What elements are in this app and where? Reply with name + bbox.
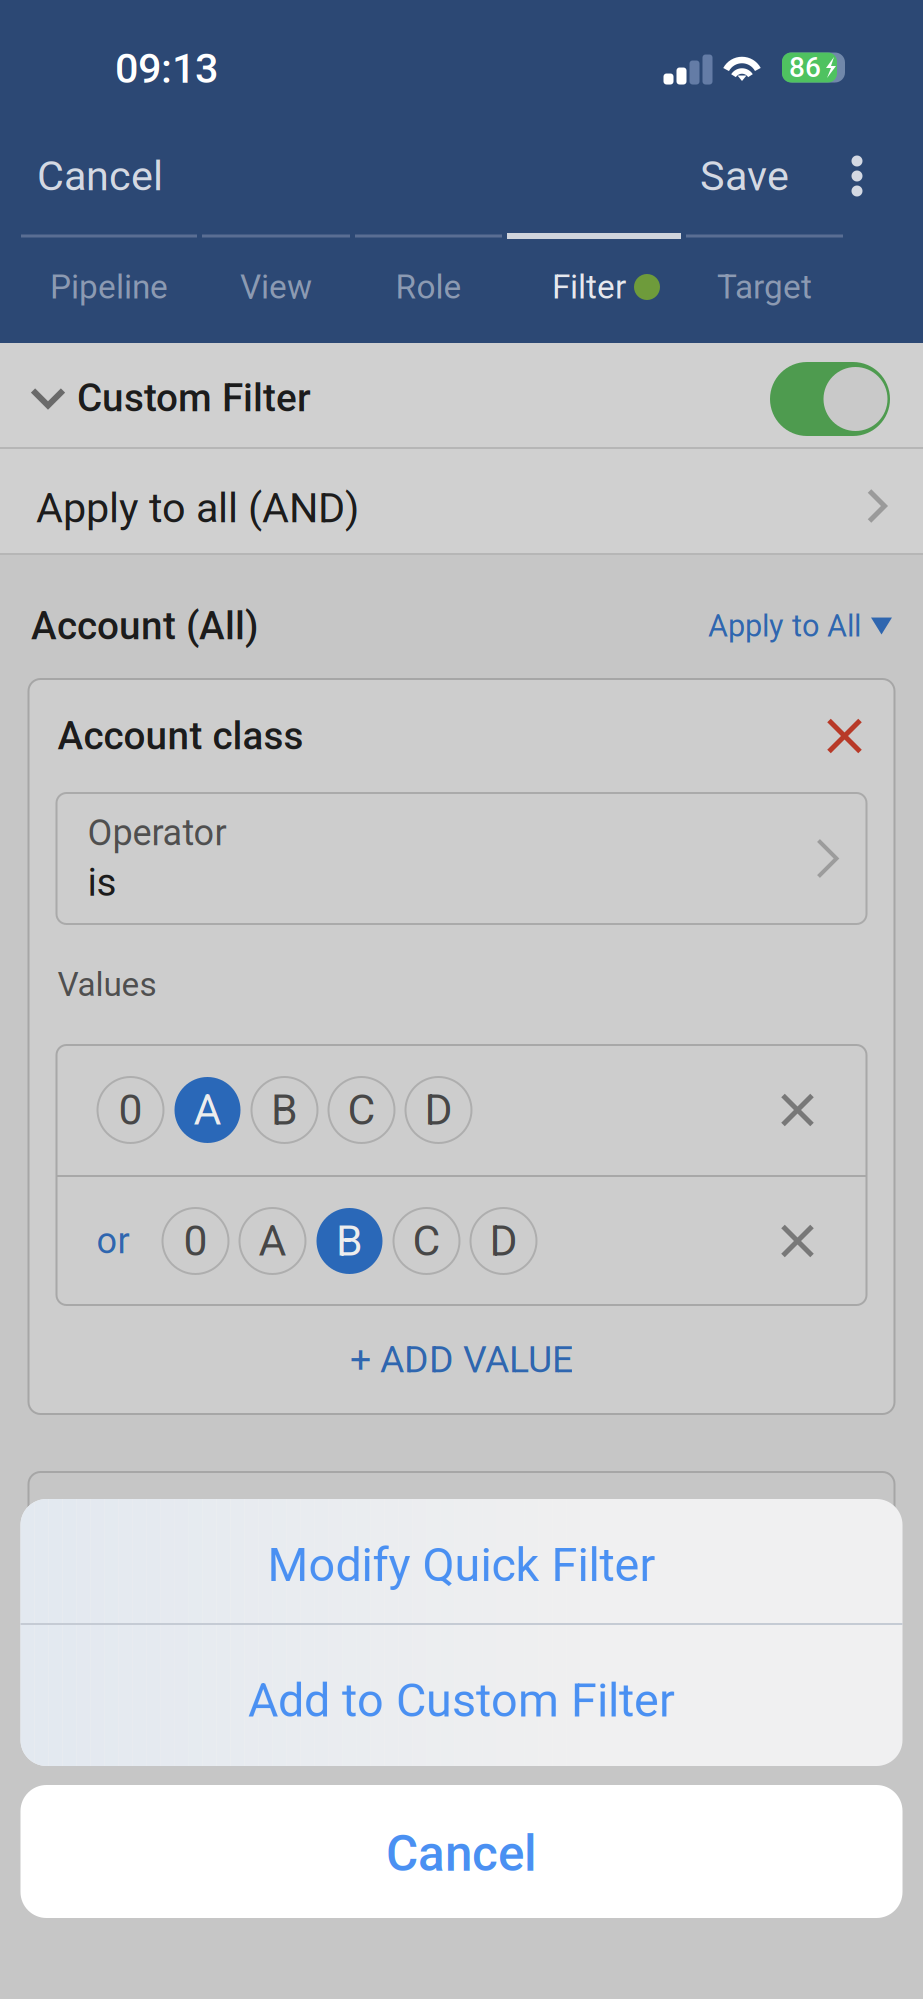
button[interactable]: Apply to All: [708, 604, 892, 648]
staticText: A: [193, 1085, 221, 1135]
staticText: Values: [57, 965, 156, 1004]
staticText: Cancel: [37, 152, 163, 200]
button[interactable]: Remove value: [767, 1080, 827, 1140]
staticText: Custom Filter: [77, 375, 311, 421]
button[interactable]: Cancel: [0, 137, 189, 215]
staticText: Filter: [552, 267, 626, 307]
staticText: 0: [118, 1085, 142, 1135]
staticText: Modify Quick Filter: [267, 1538, 655, 1592]
staticText: Apply to all (AND): [36, 484, 359, 532]
staticText: C: [347, 1085, 375, 1135]
staticText: Target: [717, 267, 812, 307]
button[interactable]: Apply to all (AND): [0, 449, 923, 553]
button[interactable]: Operator: [56, 793, 866, 924]
button[interactable]: Role: [355, 239, 502, 335]
staticText: is: [87, 860, 116, 905]
staticText: Cancel: [386, 1825, 537, 1883]
staticText: B: [336, 1216, 363, 1266]
button[interactable]: Add to Custom Filter: [20, 1625, 902, 1766]
staticText: 0: [183, 1216, 207, 1266]
staticText: Save: [700, 152, 789, 200]
staticText: D: [424, 1085, 452, 1135]
staticText: Add to Custom Filter: [248, 1673, 675, 1728]
staticText: C: [412, 1216, 440, 1266]
staticText: or: [96, 1220, 129, 1262]
button[interactable]: More options: [828, 137, 886, 215]
staticText: + ADD VALUE: [350, 1338, 573, 1381]
button[interactable]: Filter: [507, 239, 681, 335]
button[interactable]: Remove Account class: [817, 709, 871, 763]
staticText: Account class: [57, 713, 303, 759]
staticText: Role: [395, 267, 461, 307]
button[interactable]: Cancel: [20, 1785, 902, 1918]
button[interactable]: Remove value: [767, 1211, 827, 1271]
staticText: Pipeline: [50, 267, 168, 307]
staticText: Apply to All: [708, 608, 861, 644]
button[interactable]: Target: [686, 239, 843, 335]
staticText: D: [489, 1216, 517, 1266]
button[interactable]: Modify Quick Filter: [20, 1499, 902, 1623]
staticText: Operator: [87, 812, 226, 854]
button[interactable]: Save: [678, 137, 811, 215]
staticText: A: [258, 1216, 286, 1266]
staticText: B: [271, 1085, 298, 1135]
staticText: 09:13: [115, 44, 218, 93]
button[interactable]: + ADD VALUE: [28, 1305, 894, 1414]
button[interactable]: Pipeline: [21, 239, 197, 335]
staticText: 86: [789, 51, 821, 84]
staticText: Account (All): [31, 603, 259, 649]
staticText: View: [240, 267, 312, 307]
button[interactable]: View: [202, 239, 350, 335]
button[interactable]: Custom Filter toggle: [770, 358, 890, 432]
